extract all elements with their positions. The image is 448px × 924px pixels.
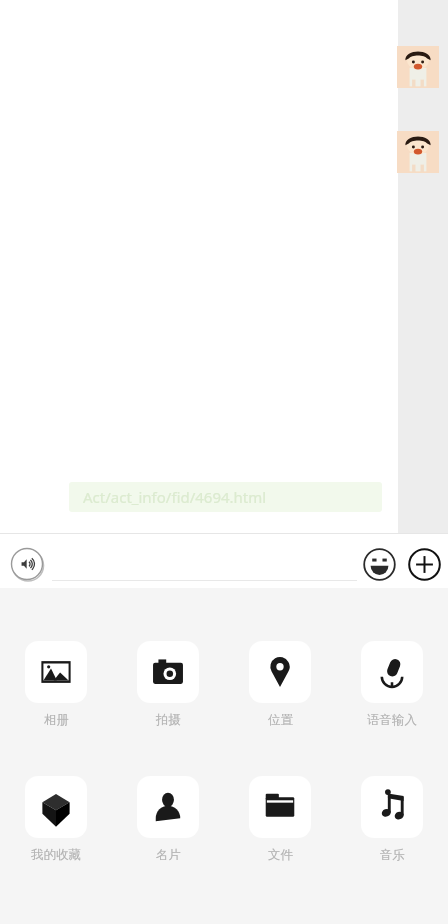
button[interactable]: 文件: [224, 776, 336, 863]
button[interactable]: Emoji: [363, 548, 396, 581]
button[interactable]: Voice input: [10, 547, 44, 581]
button[interactable]: 位置: [224, 641, 336, 728]
staticText: 文件: [268, 847, 293, 863]
button[interactable]: 拍摄: [112, 641, 224, 728]
button[interactable]: 语音输入: [336, 641, 448, 728]
button[interactable]: Act/act_info/fid/4694.html: [69, 482, 382, 512]
staticText: 位置: [268, 712, 293, 728]
button[interactable]: Avatar: [397, 46, 439, 88]
button[interactable]: Avatar: [397, 131, 439, 173]
staticText: 我的收藏: [31, 847, 81, 863]
button[interactable]: 音乐: [336, 776, 448, 863]
staticText: 语音输入: [367, 712, 417, 728]
button[interactable]: 我的收藏: [0, 776, 112, 863]
staticText: 音乐: [380, 847, 405, 863]
button[interactable]: More: [408, 548, 441, 581]
button[interactable]: 相册: [0, 641, 112, 728]
staticText: 相册: [44, 712, 69, 728]
staticText: 拍摄: [156, 712, 181, 728]
staticText: Act/act_info/fid/4694.html: [83, 487, 267, 507]
button[interactable]: 名片: [112, 776, 224, 863]
staticText: 名片: [156, 847, 181, 863]
